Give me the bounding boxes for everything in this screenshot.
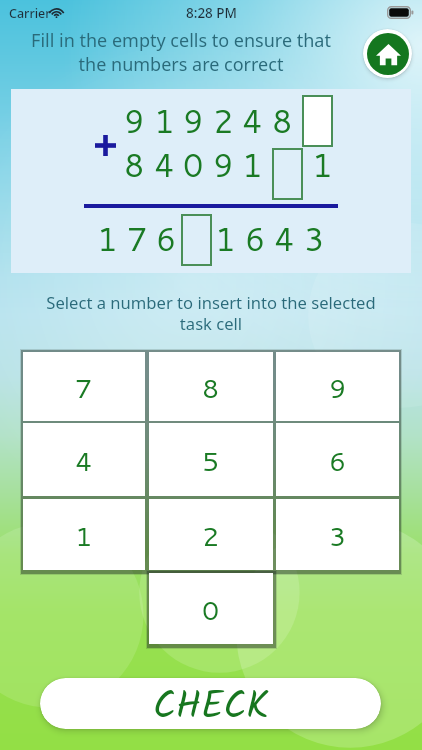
staticText: Fill in the empty cells to ensure that t…	[23, 28, 339, 76]
button[interactable]: 2	[149, 499, 273, 570]
staticText: 4	[154, 142, 175, 182]
button[interactable]: 6	[276, 423, 399, 496]
staticText: Select a number to insert into the selec…	[42, 291, 380, 335]
button[interactable]: 4	[23, 423, 145, 496]
staticText: 1	[75, 516, 93, 554]
staticText: 6	[245, 216, 266, 256]
button[interactable]: Home	[363, 29, 412, 78]
staticText: 6	[329, 441, 347, 479]
button[interactable]	[272, 148, 303, 200]
staticText: 7	[75, 368, 93, 406]
button[interactable]	[302, 95, 333, 147]
staticText: 2	[202, 516, 220, 554]
staticText: 3	[304, 216, 325, 256]
staticText: 8	[272, 98, 293, 138]
staticText: 9	[329, 368, 347, 406]
staticText: 1	[97, 216, 118, 256]
button[interactable]: 5	[149, 423, 273, 496]
staticText: 7	[127, 216, 148, 256]
staticText: 1	[312, 142, 333, 182]
staticText: 1	[154, 98, 175, 138]
button[interactable]	[181, 214, 212, 266]
button[interactable]: 9	[276, 352, 399, 421]
staticText: 9	[124, 98, 145, 138]
staticText: 8	[124, 142, 145, 182]
staticText: 0	[183, 142, 204, 182]
staticText: 9	[183, 98, 204, 138]
button[interactable]: 0	[149, 573, 273, 644]
staticText: Carrier	[9, 5, 51, 22]
button[interactable]: CHECK	[40, 678, 381, 729]
staticText: 8:28 PM	[186, 4, 237, 22]
staticText: 4	[242, 98, 263, 138]
button[interactable]: 7	[23, 352, 145, 421]
staticText: 1	[242, 142, 263, 182]
staticText: 1	[215, 216, 236, 256]
button[interactable]: 1	[23, 499, 145, 570]
staticText: 4	[274, 216, 295, 256]
staticText: 4	[75, 441, 93, 479]
staticText: CHECK	[153, 678, 269, 729]
staticText: 2	[213, 98, 234, 138]
staticText: 9	[213, 142, 234, 182]
staticText: 0	[202, 590, 220, 628]
button[interactable]: 8	[149, 352, 273, 421]
staticText: 6	[156, 216, 177, 256]
staticText: 5	[202, 441, 220, 479]
staticText: 3	[329, 516, 347, 554]
button[interactable]: 3	[276, 499, 399, 570]
staticText: 8	[202, 368, 220, 406]
